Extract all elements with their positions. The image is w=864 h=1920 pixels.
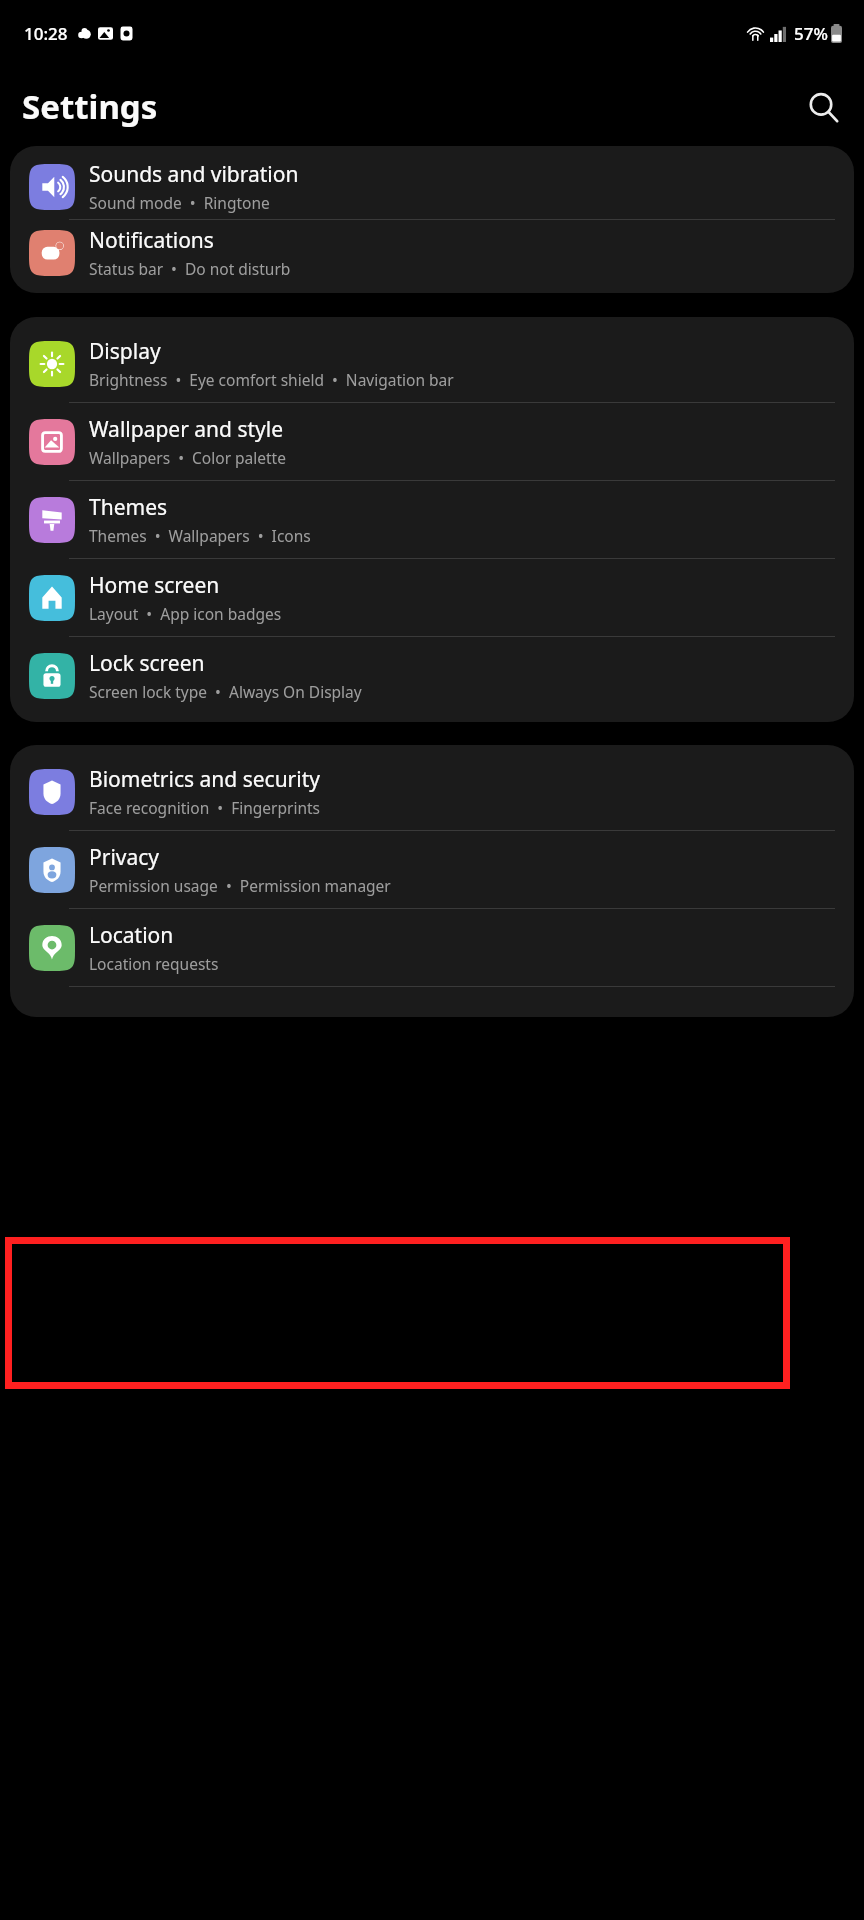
staticText: Notifications bbox=[89, 226, 214, 255]
staticText: Display bbox=[89, 337, 161, 366]
button[interactable]: Sounds and vibration bbox=[10, 154, 854, 220]
staticText: Wallpapers • Color palette bbox=[89, 447, 286, 468]
button[interactable]: Themes bbox=[10, 481, 854, 559]
staticText: Home screen bbox=[89, 571, 220, 600]
staticText: Settings bbox=[22, 84, 158, 129]
button[interactable]: Search bbox=[796, 80, 850, 134]
staticText: Face recognition • Fingerprints bbox=[89, 797, 321, 818]
button[interactable]: Notifications bbox=[10, 220, 854, 285]
staticText: Lock screen bbox=[89, 649, 205, 678]
button[interactable]: Home screen bbox=[10, 559, 854, 637]
staticText: Location requests bbox=[89, 953, 219, 974]
staticText: Location bbox=[89, 921, 174, 950]
staticText: Status bar • Do not disturb bbox=[89, 258, 291, 279]
staticText: Themes • Wallpapers • Icons bbox=[89, 525, 311, 546]
button[interactable]: Location bbox=[10, 909, 854, 987]
button[interactable]: Wallpaper and style bbox=[10, 403, 854, 481]
staticText: Screen lock type • Always On Display bbox=[89, 681, 362, 702]
button[interactable]: Display bbox=[10, 325, 854, 403]
staticText: Sounds and vibration bbox=[89, 160, 299, 189]
staticText: 57% bbox=[794, 22, 828, 45]
staticText: Brightness • Eye comfort shield • Naviga… bbox=[89, 369, 454, 390]
staticText: 10:28 bbox=[24, 22, 68, 45]
button[interactable]: Privacy bbox=[10, 831, 854, 909]
button[interactable]: Biometrics and security bbox=[10, 753, 854, 831]
staticText: Wallpaper and style bbox=[89, 415, 284, 444]
staticText: Themes bbox=[89, 493, 168, 522]
staticText: Sound mode • Ringtone bbox=[89, 192, 270, 213]
button[interactable]: Lock screen bbox=[10, 637, 854, 714]
staticText: Permission usage • Permission manager bbox=[89, 875, 391, 896]
staticText: Privacy bbox=[89, 843, 160, 872]
staticText: Biometrics and security bbox=[89, 765, 320, 794]
staticText: Layout • App icon badges bbox=[89, 603, 282, 624]
